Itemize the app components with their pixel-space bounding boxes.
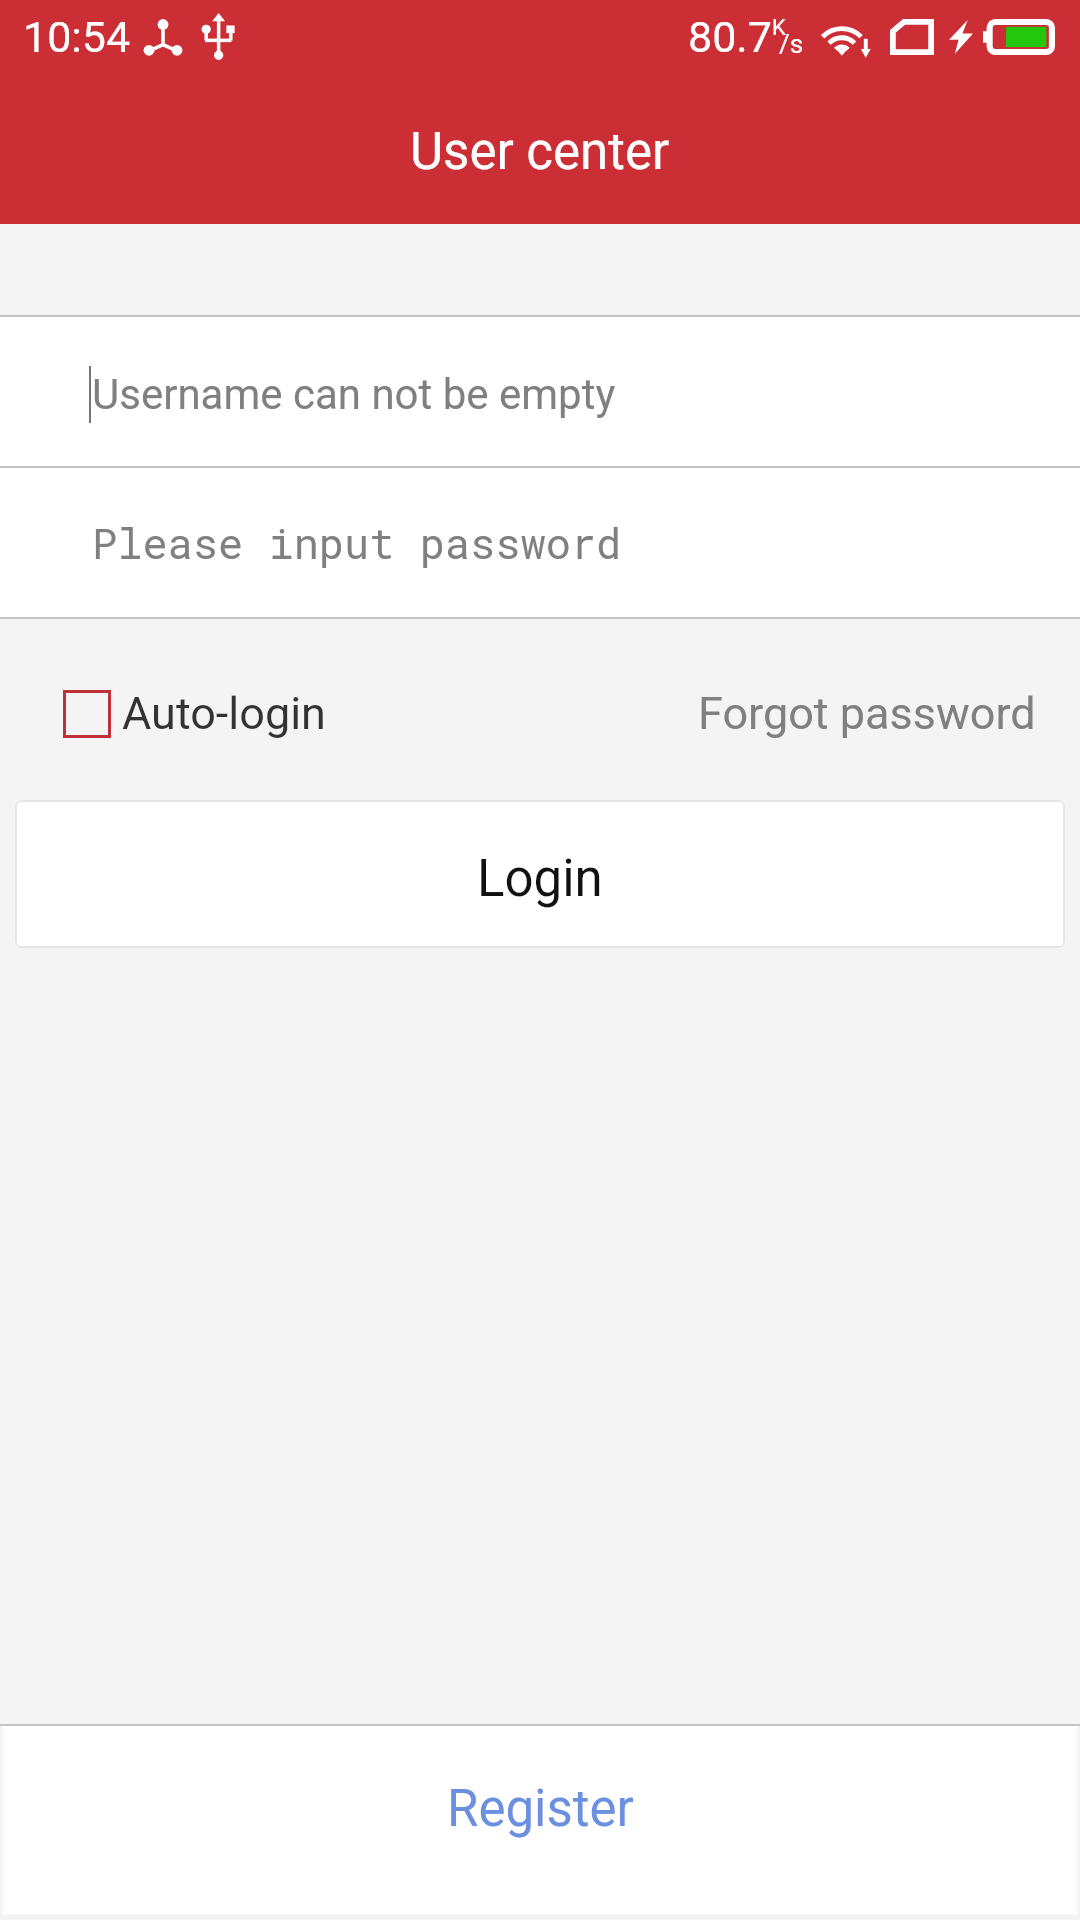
staticText: /s (779, 29, 804, 59)
staticText: 80.7 (688, 12, 772, 62)
staticText: User center (410, 122, 670, 182)
button[interactable]: Please input password (0, 468, 1080, 617)
other: SIM card (890, 19, 934, 55)
button[interactable]: Forgot password (676, 673, 1058, 754)
button[interactable]: Auto-login (48, 673, 341, 754)
staticText: Username can not be empty (92, 370, 616, 419)
staticText: K (772, 15, 786, 41)
staticText: Forgot password (698, 687, 1036, 740)
staticText: Register (447, 1779, 634, 1839)
other: Wi-Fi (820, 14, 872, 60)
other: Charging (949, 20, 973, 54)
button[interactable]: Username can not be empty (0, 317, 1080, 466)
button[interactable]: Register (3, 1726, 1077, 1914)
other: Network (143, 18, 183, 56)
staticText: 10:54 (23, 12, 131, 62)
other: USB (202, 13, 234, 61)
other: Battery (983, 19, 1055, 55)
staticText: Auto-login (122, 687, 326, 740)
button[interactable]: Login (15, 800, 1065, 948)
staticText: Please input password (92, 515, 622, 570)
staticText: Login (477, 849, 603, 909)
